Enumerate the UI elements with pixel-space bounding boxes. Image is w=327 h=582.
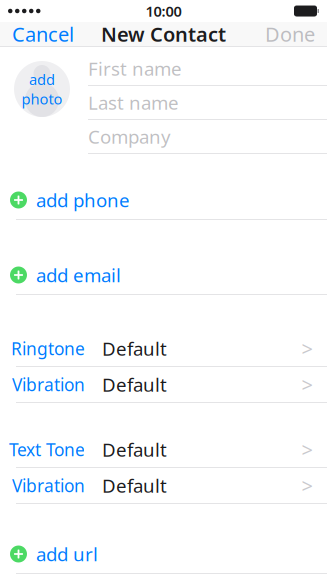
staticText: add url [36, 542, 98, 566]
staticText: Default [102, 336, 167, 361]
button[interactable]: add url [0, 535, 327, 573]
staticText: add phone [36, 188, 130, 212]
staticText: > [301, 472, 312, 499]
staticText: Done [265, 21, 315, 47]
button[interactable]: Vibration [0, 367, 327, 402]
staticText: Company [88, 124, 171, 149]
staticText: Cancel [12, 21, 74, 47]
button[interactable]: Text Tone [0, 432, 327, 467]
staticText: First name [88, 56, 182, 81]
staticText: New Contact [101, 21, 226, 47]
button[interactable]: add email [0, 256, 327, 294]
staticText: Last name [88, 90, 179, 115]
staticText: Default [102, 437, 167, 462]
staticText: > [301, 371, 312, 398]
staticText: 10:00 [145, 1, 181, 21]
staticText: Default [102, 473, 167, 498]
button[interactable]: Add photo [14, 61, 70, 117]
staticText: Vibration [12, 474, 85, 497]
staticText: Text Tone [9, 438, 85, 461]
button[interactable]: Cancel [0, 17, 86, 51]
staticText: Default [102, 372, 167, 397]
staticText: add [29, 69, 55, 89]
button[interactable]: add phone [0, 181, 327, 219]
button[interactable]: Done [253, 17, 327, 51]
button[interactable]: Ringtone [0, 331, 327, 366]
staticText: > [301, 335, 312, 362]
staticText: add email [36, 263, 121, 287]
staticText: Ringtone [11, 337, 85, 360]
staticText: Vibration [12, 373, 85, 396]
button[interactable]: Vibration [0, 468, 327, 503]
staticText: photo [21, 89, 62, 108]
staticText: > [301, 436, 312, 463]
